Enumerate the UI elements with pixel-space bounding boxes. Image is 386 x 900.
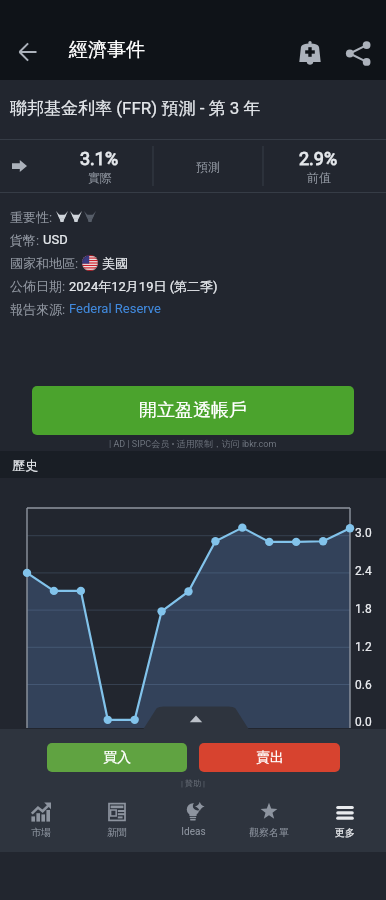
- button[interactable]: Federal Reserve: [69, 301, 161, 316]
- staticText: 預測: [196, 159, 220, 174]
- button[interactable]: 觀察名單: [234, 790, 304, 852]
- staticText: USD: [43, 232, 68, 247]
- button[interactable]: Expand trading panel: [140, 704, 252, 730]
- staticText: 2.9%: [299, 148, 338, 169]
- button[interactable]: Ideas: [158, 790, 228, 852]
- button[interactable]: Back: [10, 34, 46, 70]
- button[interactable]: 2.9%: [263, 139, 373, 193]
- button[interactable]: 更多: [310, 790, 380, 852]
- staticText: 報告來源:: [10, 301, 69, 317]
- staticText: 0.6: [355, 678, 372, 692]
- button[interactable]: 新聞: [82, 790, 152, 852]
- staticText: 1.8: [355, 602, 372, 616]
- staticText: 2024年12月19日 (第二季): [69, 278, 218, 294]
- staticText: 3.0: [355, 526, 372, 540]
- staticText: Ideas: [181, 826, 206, 838]
- staticText: 賣出: [256, 749, 284, 767]
- button[interactable]: Create alert: [294, 37, 326, 69]
- staticText: 貨幣:: [10, 232, 43, 248]
- staticText: 3.1%: [80, 148, 119, 169]
- staticText: 重要性:: [10, 209, 56, 225]
- staticText: 觀察名單: [249, 826, 289, 839]
- staticText: 0.0: [355, 715, 372, 729]
- button[interactable]: Share: [344, 39, 373, 68]
- staticText: 開立盈透帳戶: [139, 399, 247, 422]
- staticText: 更多: [335, 826, 355, 839]
- staticText: 經濟事件: [69, 38, 145, 62]
- staticText: | AD | SIPC会员 • 适用限制，访问 ibkr.com: [109, 438, 277, 449]
- button[interactable]: 預測: [153, 139, 263, 193]
- staticText: 1.2: [355, 640, 372, 654]
- button[interactable]: 3.1%: [44, 139, 154, 193]
- staticText: 市場: [31, 826, 51, 839]
- staticText: 美國: [102, 255, 128, 271]
- staticText: 公佈日期:: [10, 278, 69, 294]
- button[interactable]: 買入: [47, 743, 187, 772]
- staticText: 前值: [307, 170, 331, 185]
- staticText: 實際: [88, 170, 112, 185]
- staticText: 買入: [103, 749, 131, 767]
- button[interactable]: 市場: [6, 790, 76, 852]
- staticText: Federal Reserve: [69, 301, 161, 316]
- button[interactable]: 開立盈透帳戶: [32, 386, 354, 435]
- staticText: | 贊助 |: [181, 778, 205, 788]
- staticText: 2.4: [355, 564, 372, 578]
- staticText: 歷史: [12, 457, 38, 473]
- button[interactable]: 賣出: [199, 743, 340, 772]
- staticText: 新聞: [107, 826, 127, 839]
- staticText: 國家和地區:: [10, 255, 82, 271]
- staticText: 聯邦基金利率 (FFR) 預測 - 第 3 年: [10, 98, 261, 119]
